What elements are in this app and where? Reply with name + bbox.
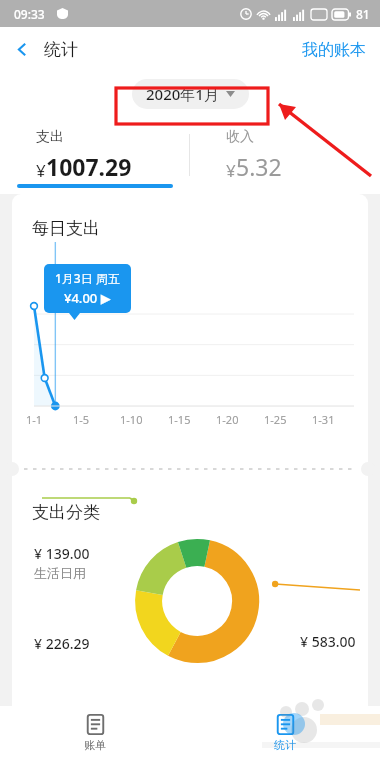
staticText: 2020年1月 [146, 84, 219, 104]
staticText: 每日支出 [32, 218, 100, 239]
button[interactable]: 我的账本 [288, 27, 380, 72]
button[interactable]: 账单 [0, 706, 190, 760]
staticText: 统计 [274, 738, 296, 752]
staticText: ¥ [226, 159, 236, 182]
staticText: 5.32 [236, 151, 282, 182]
staticText: 1月3日 周五 [55, 270, 120, 286]
staticText: 1-1 [26, 412, 73, 427]
staticText: ¥ 583.00 [300, 632, 356, 651]
staticText: ¥ [36, 159, 46, 182]
staticText: 支出分类 [32, 502, 100, 523]
staticText: 1-20 [216, 412, 264, 427]
staticText: 1-5 [73, 412, 120, 427]
staticText: 81 [356, 6, 370, 22]
staticText: 生活日用 [34, 565, 86, 581]
staticText: 1-31 [312, 412, 360, 427]
staticText: ¥ 139.00 [34, 544, 90, 563]
staticText: 收入 [226, 128, 254, 146]
staticText: 09:33 [14, 6, 45, 22]
staticText: 我的账本 [302, 40, 366, 60]
button[interactable]: 支出 [0, 116, 189, 194]
staticText: 1-10 [120, 412, 168, 427]
button[interactable]: Back [0, 27, 44, 72]
staticText: 1007.29 [46, 151, 132, 182]
staticText: 支出 [36, 128, 64, 146]
staticText: 账单 [84, 738, 106, 752]
button[interactable]: 收入 [190, 116, 380, 194]
staticText: ¥ 226.29 [34, 634, 90, 653]
staticText: 1-15 [168, 412, 216, 427]
staticText: 统计 [44, 39, 78, 60]
button[interactable]: 1月3日 周五 [44, 264, 131, 313]
button[interactable]: 2020年1月 [132, 79, 249, 109]
staticText: ¥4.00 ▶ [64, 289, 111, 307]
button[interactable]: 统计 [190, 706, 380, 760]
staticText: 1-25 [264, 412, 312, 427]
